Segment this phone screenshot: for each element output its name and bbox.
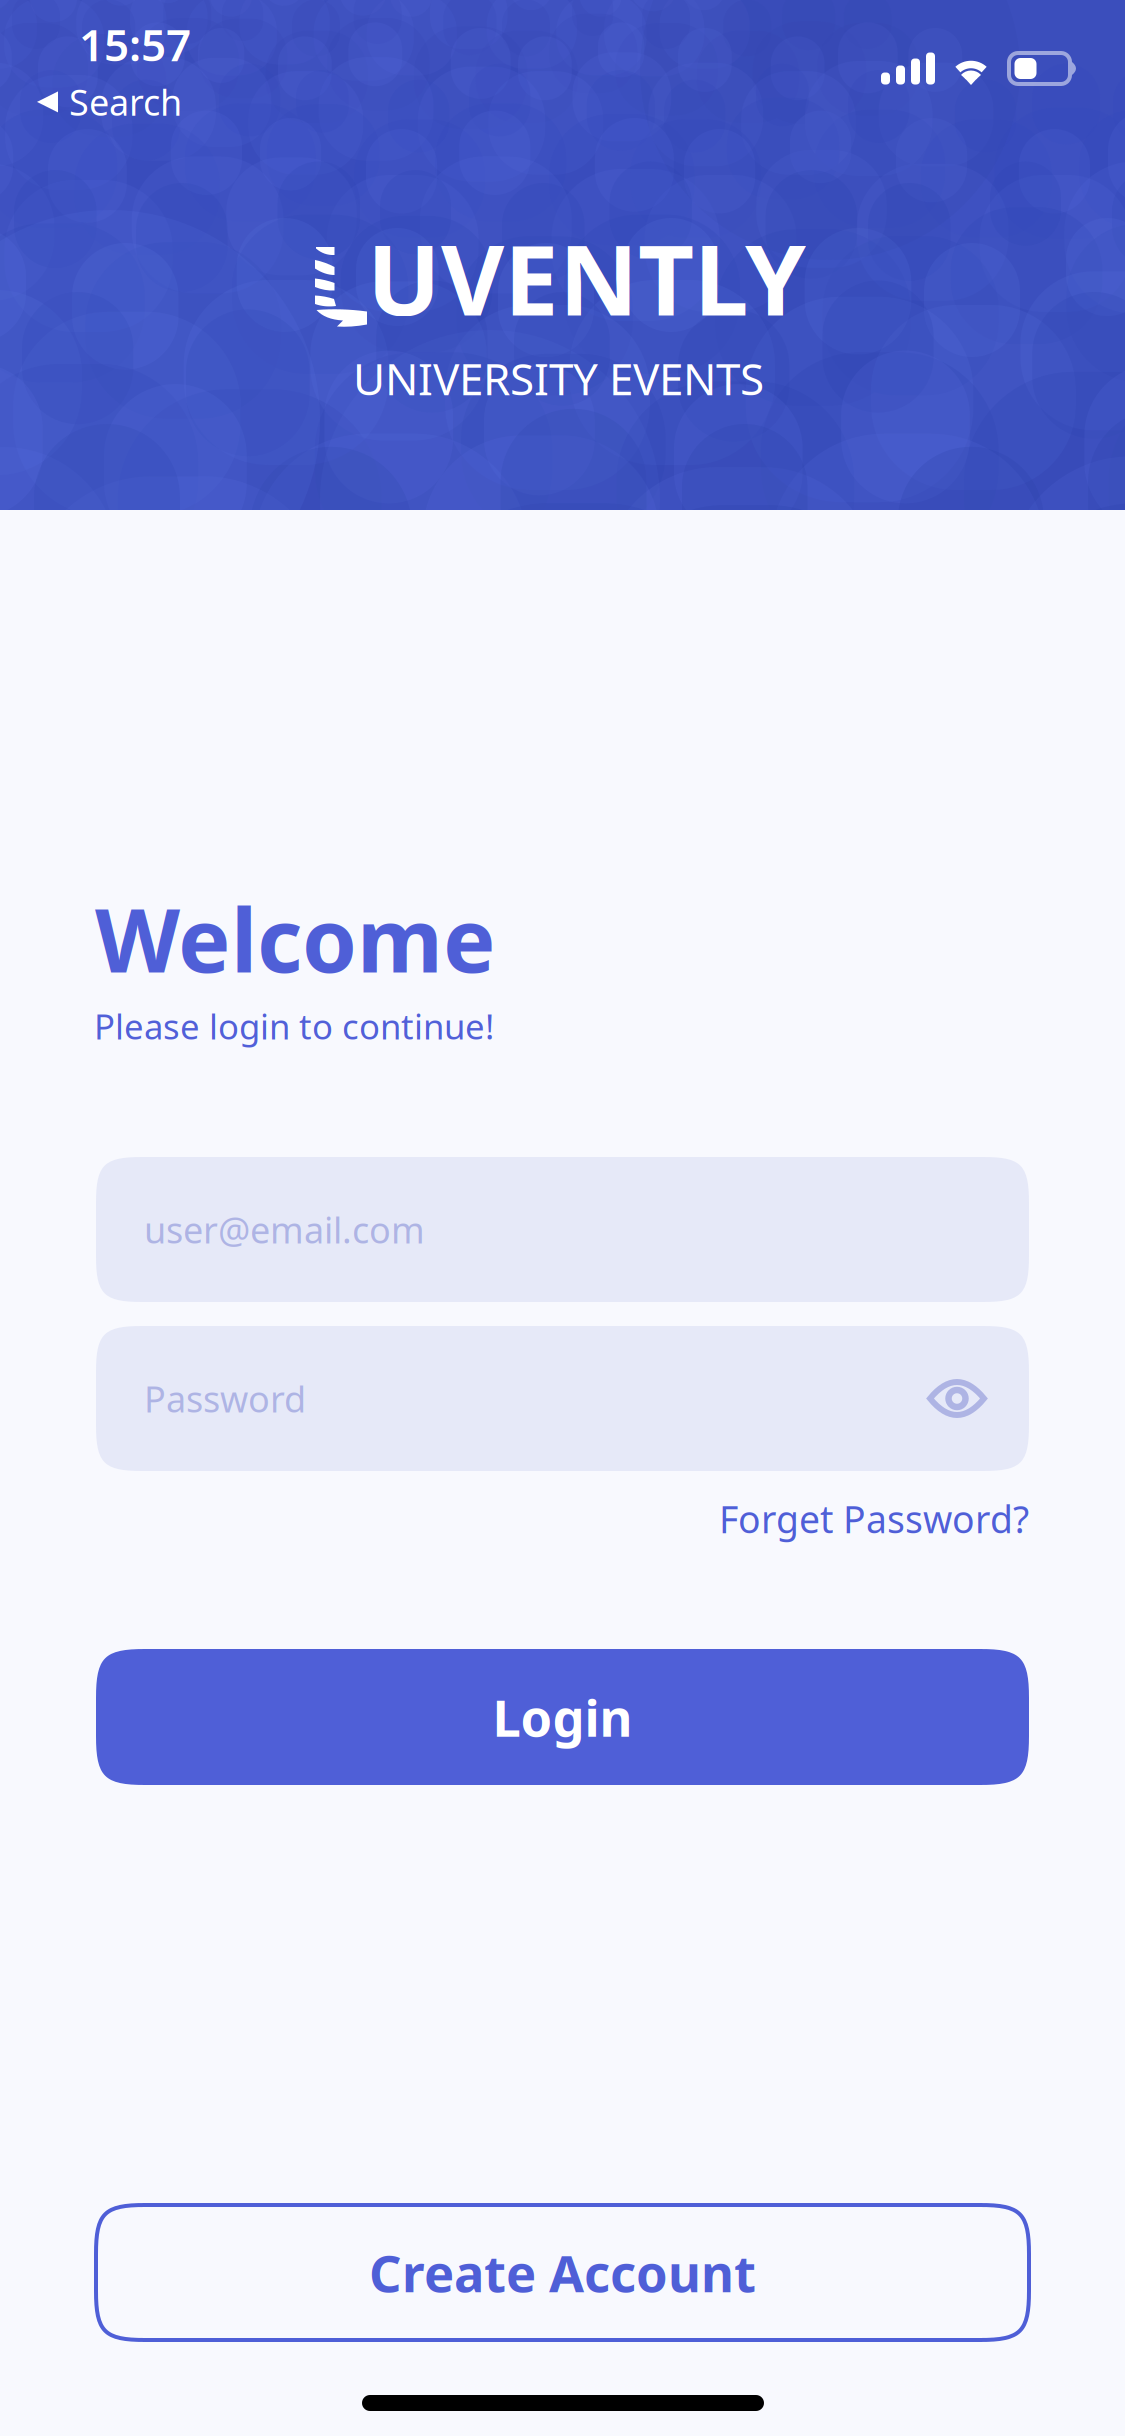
button[interactable]: Create Account <box>96 2205 1029 2340</box>
staticText: user@email.com <box>144 1206 425 1253</box>
button[interactable]: Show password <box>919 1368 995 1428</box>
staticText: Create Account <box>369 2239 756 2306</box>
staticText: Login <box>492 1683 632 1751</box>
button[interactable]: Forget Password? <box>719 1494 1029 1544</box>
staticText: UNIVERSITY EVENTS <box>353 349 764 407</box>
staticText: Password <box>144 1375 306 1422</box>
staticText: Welcome <box>95 880 496 997</box>
staticText: 15:57 <box>79 15 191 73</box>
staticText: Forget Password? <box>719 1494 1029 1544</box>
staticText: UVENTLY <box>367 213 806 342</box>
button[interactable]: Search <box>37 78 182 126</box>
staticText: Search <box>69 78 182 126</box>
button[interactable]: Login <box>96 1649 1029 1785</box>
staticText: Please login to continue! <box>94 1003 494 1049</box>
button[interactable]: user@email.com <box>96 1157 1029 1302</box>
